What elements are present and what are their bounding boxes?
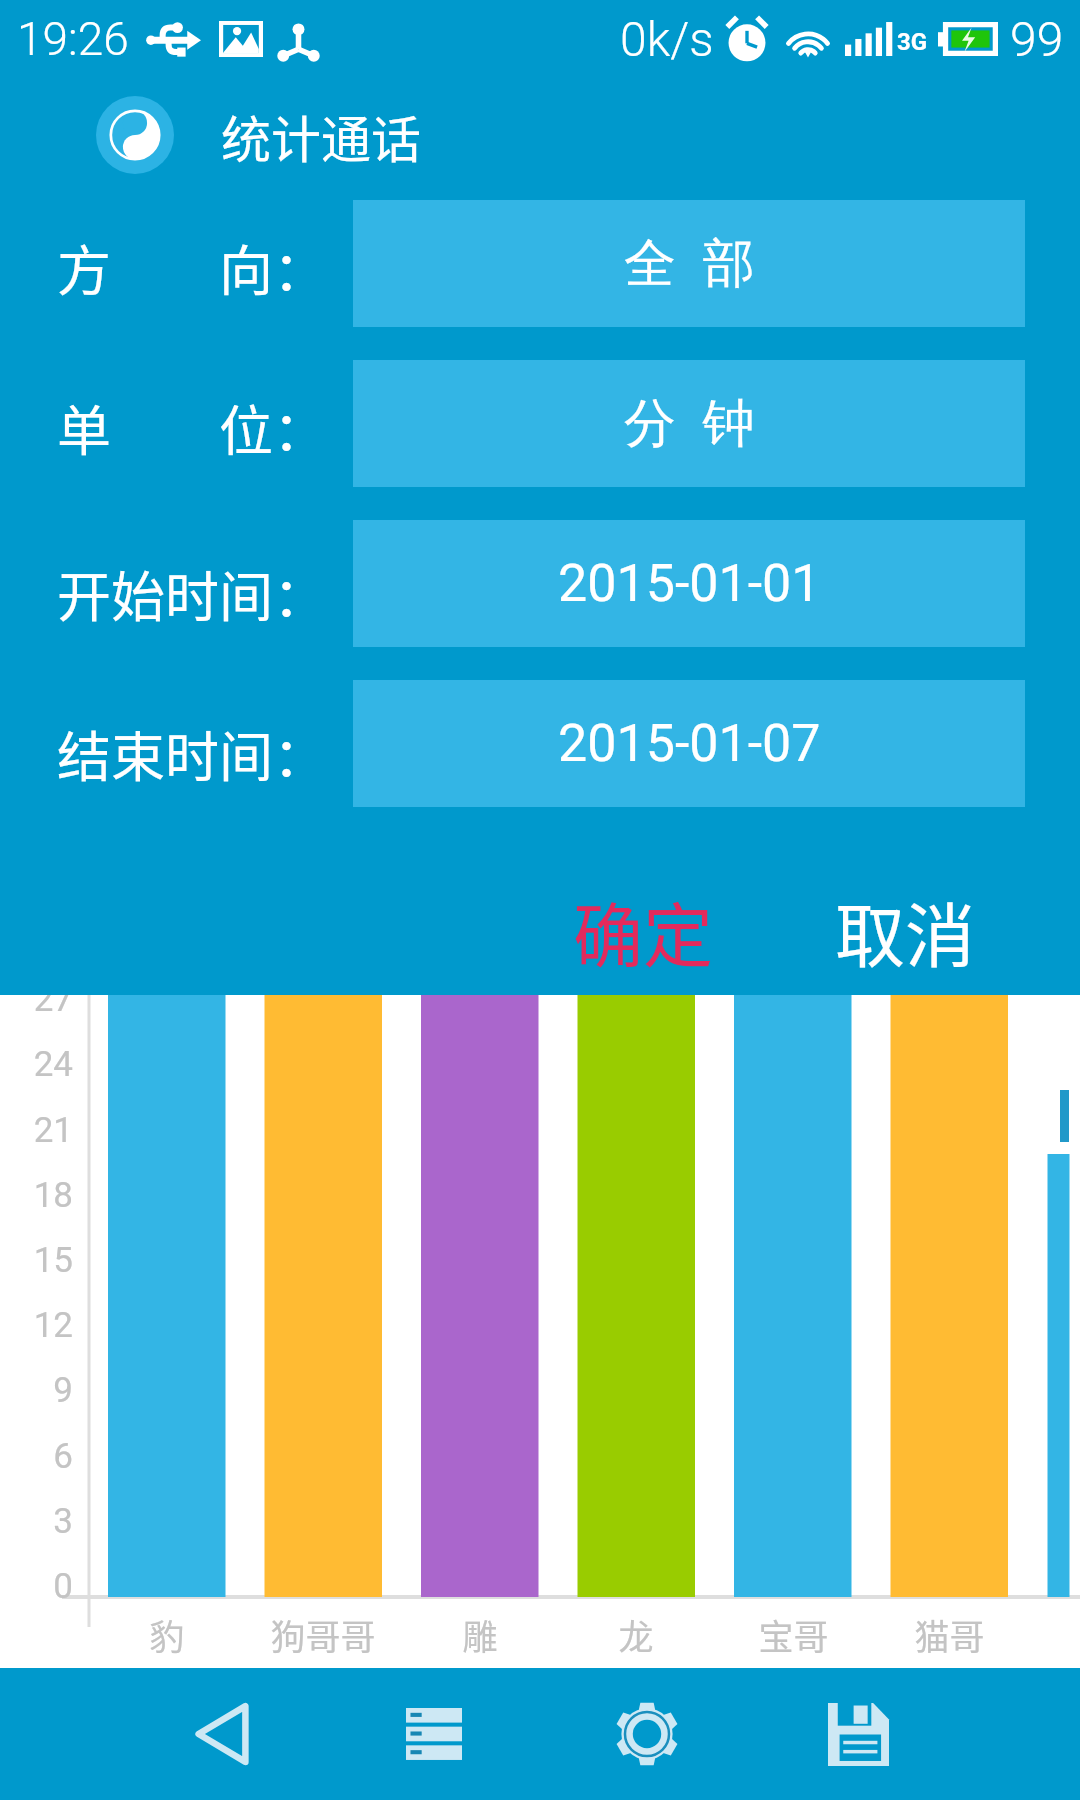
button[interactable]: Save [752,1668,964,1800]
staticText: 取消 [835,881,975,982]
staticText: 0k/s [620,11,714,67]
staticText: 单 位： [57,388,327,466]
staticText: 0 [53,1566,73,1607]
staticText: 3G [897,28,928,56]
button[interactable]: 2015-01-01 [353,520,1025,647]
staticText: 12 [33,1305,73,1346]
staticText: 6 [53,1436,73,1477]
staticText: 3 [53,1501,73,1542]
button[interactable]: 2015-01-07 [353,680,1025,807]
staticText: 2015-01-07 [558,713,821,774]
other: App icon [96,96,174,174]
button[interactable]: List [328,1668,540,1800]
button[interactable]: 确定 [560,871,726,992]
staticText: 21 [33,1110,73,1151]
staticText: 确定 [573,881,713,982]
staticText: 宝哥 [758,1609,829,1660]
staticText: 豹 [149,1609,185,1660]
button[interactable]: Back [116,1668,328,1800]
button[interactable]: Settings [541,1668,753,1800]
staticText: 开始时间： [57,554,327,632]
button[interactable]: 全 部 [353,200,1025,327]
staticText: 雕 [462,1609,498,1660]
staticText: 24 [33,1044,73,1085]
staticText: 19:26 [17,12,129,66]
staticText: 猫哥 [914,1609,985,1660]
staticText: 9 [53,1370,73,1411]
staticText: 龙 [618,1609,654,1660]
button[interactable]: 取消 [822,871,988,992]
staticText: 狗哥哥 [270,1609,376,1660]
button[interactable]: 分 钟 [353,360,1025,487]
staticText: 结束时间： [57,714,327,792]
staticText: 方 向： [57,228,327,306]
staticText: 99 [1010,11,1064,67]
staticText: 27 [33,979,73,1020]
staticText: 15 [33,1240,73,1281]
staticText: 全 部 [624,231,755,297]
staticText: 分 钟 [624,391,755,457]
staticText: 18 [33,1175,73,1216]
staticText: 2015-01-01 [558,553,821,614]
staticText: 统计通话 [221,100,421,168]
